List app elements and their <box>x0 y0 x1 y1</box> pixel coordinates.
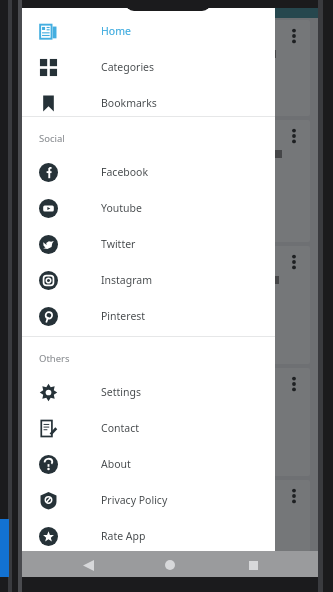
staticText: Rate App <box>101 529 146 543</box>
button[interactable]: Privacy Policy <box>22 483 275 517</box>
button[interactable]: Contact <box>22 411 275 445</box>
button[interactable] <box>30 480 310 552</box>
staticText: Instagram <box>101 273 153 287</box>
staticText: Pinterest <box>101 309 146 323</box>
button[interactable] <box>30 368 310 476</box>
button[interactable]: Twitter <box>22 227 275 261</box>
button[interactable]: Pinterest <box>22 299 275 333</box>
button[interactable]: Home <box>153 551 187 579</box>
button[interactable] <box>30 246 310 364</box>
button[interactable]: About <box>22 447 275 481</box>
staticText: About <box>101 457 131 471</box>
button[interactable]: Categories <box>22 50 275 84</box>
button[interactable]: Back <box>71 551 105 579</box>
button[interactable]: Bookmarks <box>22 86 275 120</box>
button[interactable]: Instagram <box>22 263 275 297</box>
staticText: Contact <box>101 421 139 435</box>
staticText: Settings <box>101 385 141 399</box>
staticText: Twitter <box>101 237 136 251</box>
button[interactable]: Facebook <box>22 155 275 189</box>
button[interactable]: Home <box>22 14 275 48</box>
staticText: Youtube <box>101 201 142 215</box>
staticText: Bookmarks <box>101 96 157 110</box>
button[interactable]: Settings <box>22 375 275 409</box>
button[interactable]: Rate App <box>22 519 275 553</box>
button[interactable]: Notifications <box>280 22 302 44</box>
button[interactable] <box>30 20 310 116</box>
button[interactable]: Recent apps <box>236 551 270 579</box>
button[interactable] <box>30 120 310 242</box>
staticText: Facebook <box>101 165 149 179</box>
button[interactable]: Youtube <box>22 191 275 225</box>
staticText: Social <box>39 132 65 145</box>
staticText: Others <box>39 352 70 365</box>
staticText: Privacy Policy <box>101 493 168 507</box>
staticText: Categories <box>101 60 155 74</box>
staticText: Home <box>101 24 131 38</box>
